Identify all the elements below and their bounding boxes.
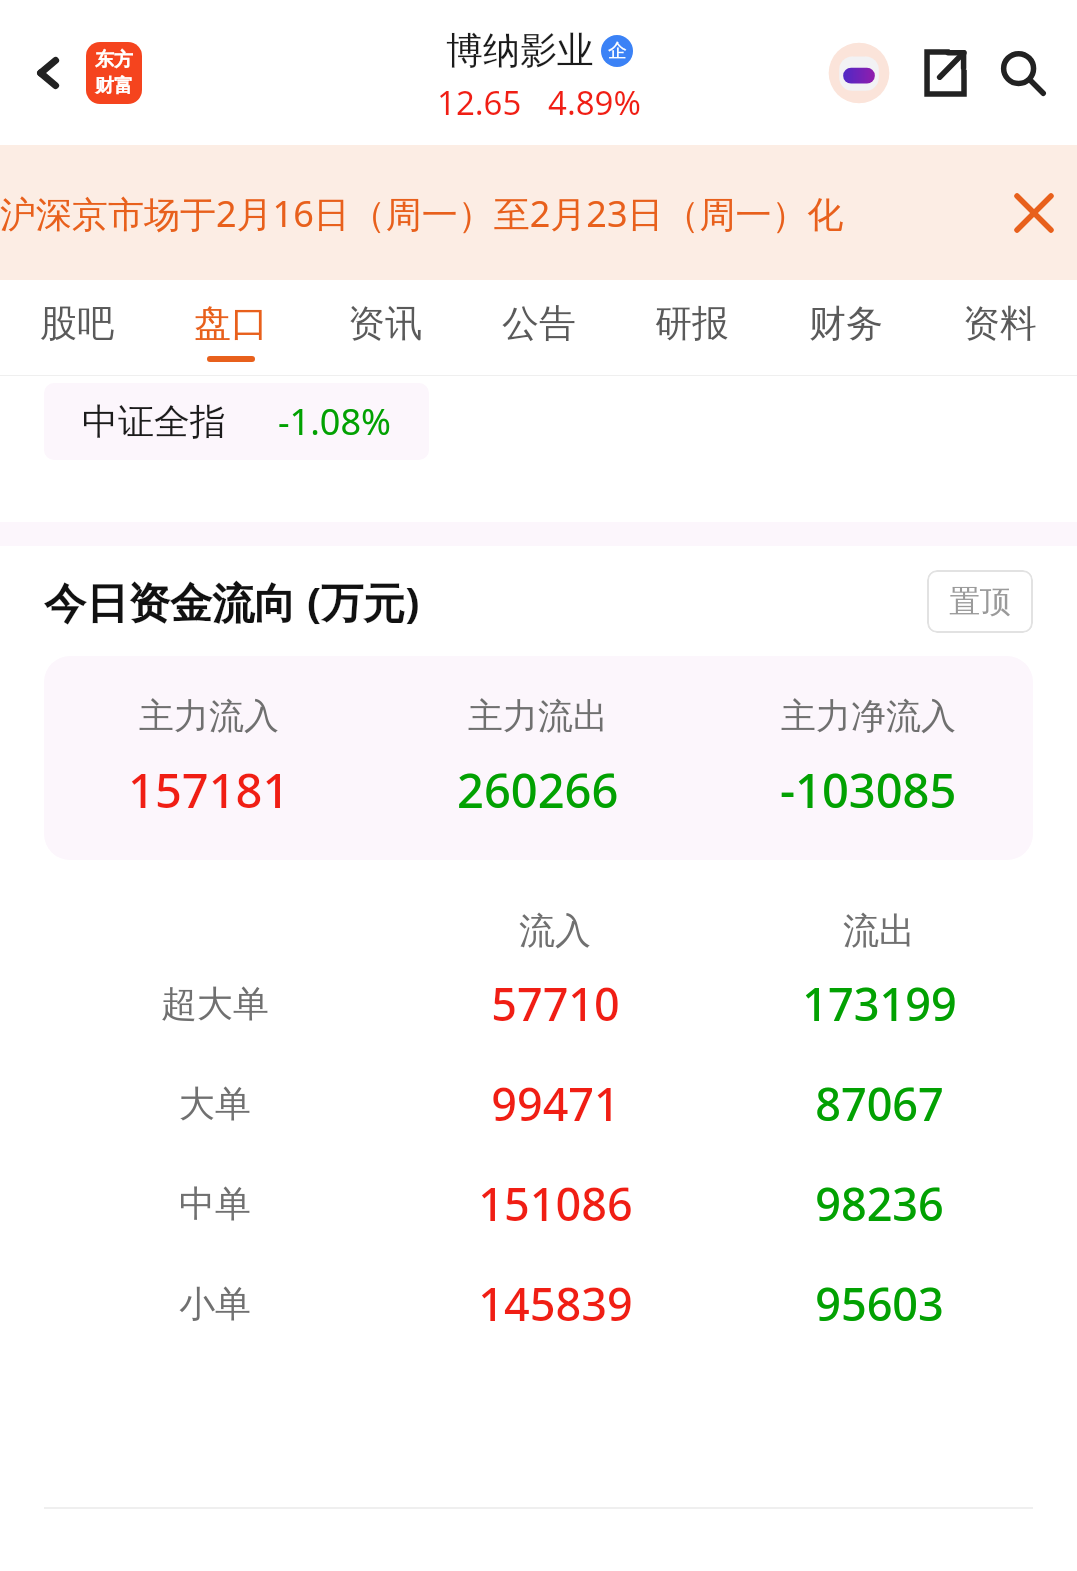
staticText: 流入 [519,908,591,953]
staticText: 财 [95,74,114,98]
staticText: 股吧 [40,300,114,347]
button[interactable]: 沪深京市场于2月16日（周一）至2月23日（周一）化 [0,189,991,238]
button[interactable]: 主力流入 [44,656,1033,860]
button[interactable]: 公告 [498,280,580,375]
staticText: 87067 [815,1073,944,1134]
staticText: 157181 [128,758,290,822]
button[interactable]: Back [18,42,80,104]
staticText: 公告 [502,300,576,347]
button[interactable]: East Money [86,42,142,104]
staticText: 沪深京市场于2月16日（周一）至2月23日（周一）化 [0,189,844,238]
button[interactable]: 大单 [36,1053,1041,1153]
button[interactable]: Search [991,41,1055,105]
button[interactable]: 资料 [959,280,1041,375]
staticText: 研报 [655,300,729,347]
button[interactable]: AI assistant [823,37,895,109]
staticText: 小单 [179,1281,251,1326]
staticText: -1.08% [278,397,391,446]
button[interactable]: 财务 [805,280,887,375]
button[interactable]: 研报 [651,280,733,375]
staticText: 财务 [809,300,883,347]
staticText: 中单 [179,1181,251,1226]
staticText: 12.65 [437,80,522,125]
button[interactable]: Share [911,41,975,105]
staticText: 富 [114,74,133,98]
staticText: 260266 [457,758,619,822]
button[interactable]: 盘口 [190,280,272,375]
staticText: 主力流入 [139,694,279,738]
staticText: 资讯 [348,300,422,347]
button[interactable]: 小单 [36,1253,1041,1353]
staticText: 盘口 [194,300,268,347]
staticText: -103085 [780,758,957,822]
staticText: 流出 [843,908,915,953]
staticText: 中证全指 [82,399,226,444]
staticText: 大单 [179,1081,251,1126]
staticText: 东 [95,48,114,72]
staticText: 98236 [815,1173,944,1234]
staticText: 主力流出 [468,694,608,738]
button[interactable]: 资讯 [344,280,426,375]
staticText: 95603 [815,1273,944,1334]
button[interactable]: 超大单 [36,953,1041,1053]
button[interactable]: 置顶 [927,570,1033,633]
staticText: 企 [608,39,627,63]
button[interactable]: 中单 [36,1153,1041,1253]
staticText: 145839 [478,1273,633,1334]
staticText: 超大单 [161,981,269,1026]
staticText: 151086 [478,1173,633,1234]
staticText: 57710 [491,973,620,1034]
button[interactable]: 股吧 [36,280,118,375]
button[interactable]: Close [991,170,1077,256]
staticText: 置顶 [949,582,1011,621]
staticText: 方 [114,48,133,72]
staticText: 173199 [802,973,957,1034]
staticText: 4.89% [548,80,641,125]
staticText: 99471 [491,1073,620,1134]
staticText: 今日资金流向 (万元) [44,573,420,630]
staticText: 资料 [963,300,1037,347]
staticText: 主力净流入 [781,694,956,738]
button[interactable]: 中证全指 [44,383,429,460]
staticText: 博纳影业 [446,27,594,74]
